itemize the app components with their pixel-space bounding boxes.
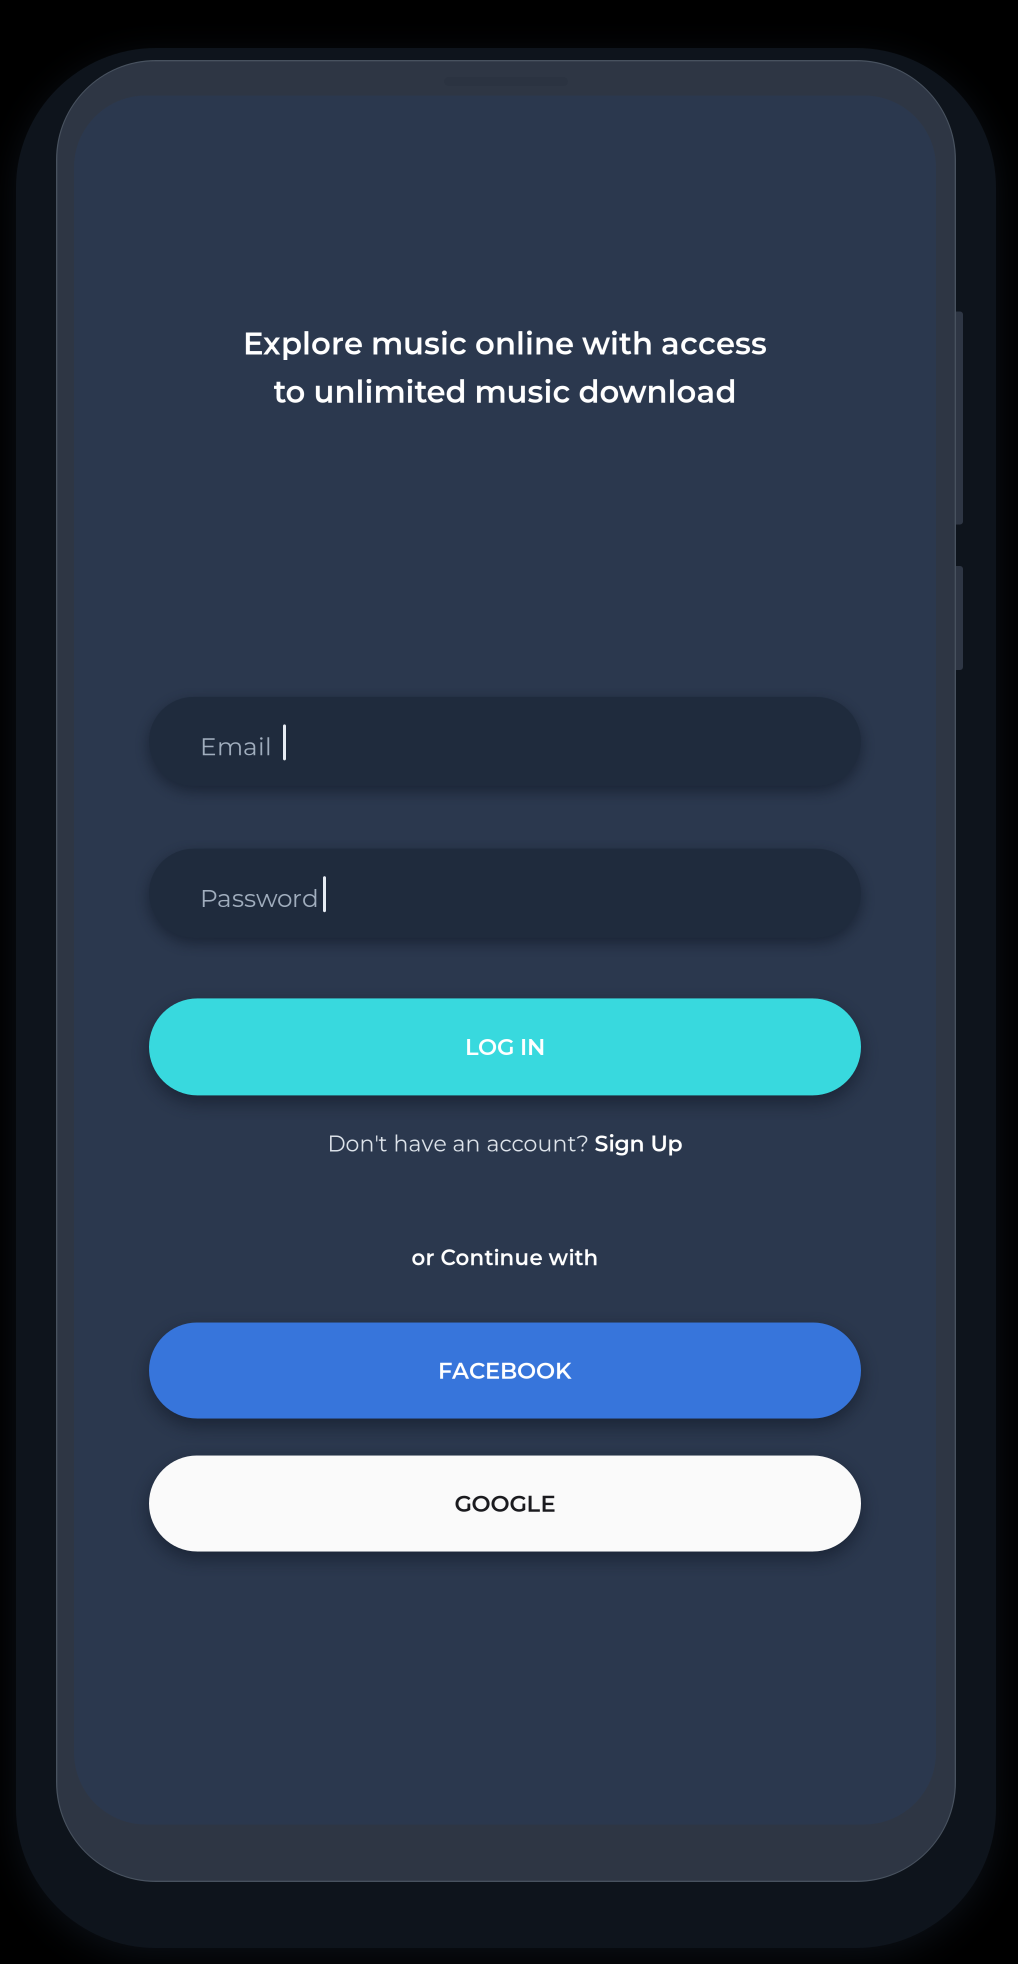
staticText: Email <box>200 731 272 761</box>
staticText: or Continue with <box>411 1244 598 1270</box>
button[interactable]: LOG IN <box>149 998 861 1095</box>
button[interactable]: Email <box>149 697 861 786</box>
staticText: Explore music online with access <box>243 325 767 362</box>
staticText: GOOGLE <box>454 1490 555 1517</box>
button[interactable]: FACEBOOK <box>149 1322 861 1418</box>
button[interactable]: GOOGLE <box>149 1455 861 1551</box>
staticText: FACEBOOK <box>438 1357 572 1384</box>
button[interactable]: Password <box>149 849 861 938</box>
staticText: Don't have an account? <box>327 1130 594 1157</box>
staticText: Password <box>200 883 319 913</box>
staticText: LOG IN <box>465 1033 545 1061</box>
staticText: to unlimited music download <box>273 373 736 410</box>
button[interactable]: Don't have an account? <box>275 1120 735 1166</box>
staticText: Sign Up <box>594 1130 682 1157</box>
